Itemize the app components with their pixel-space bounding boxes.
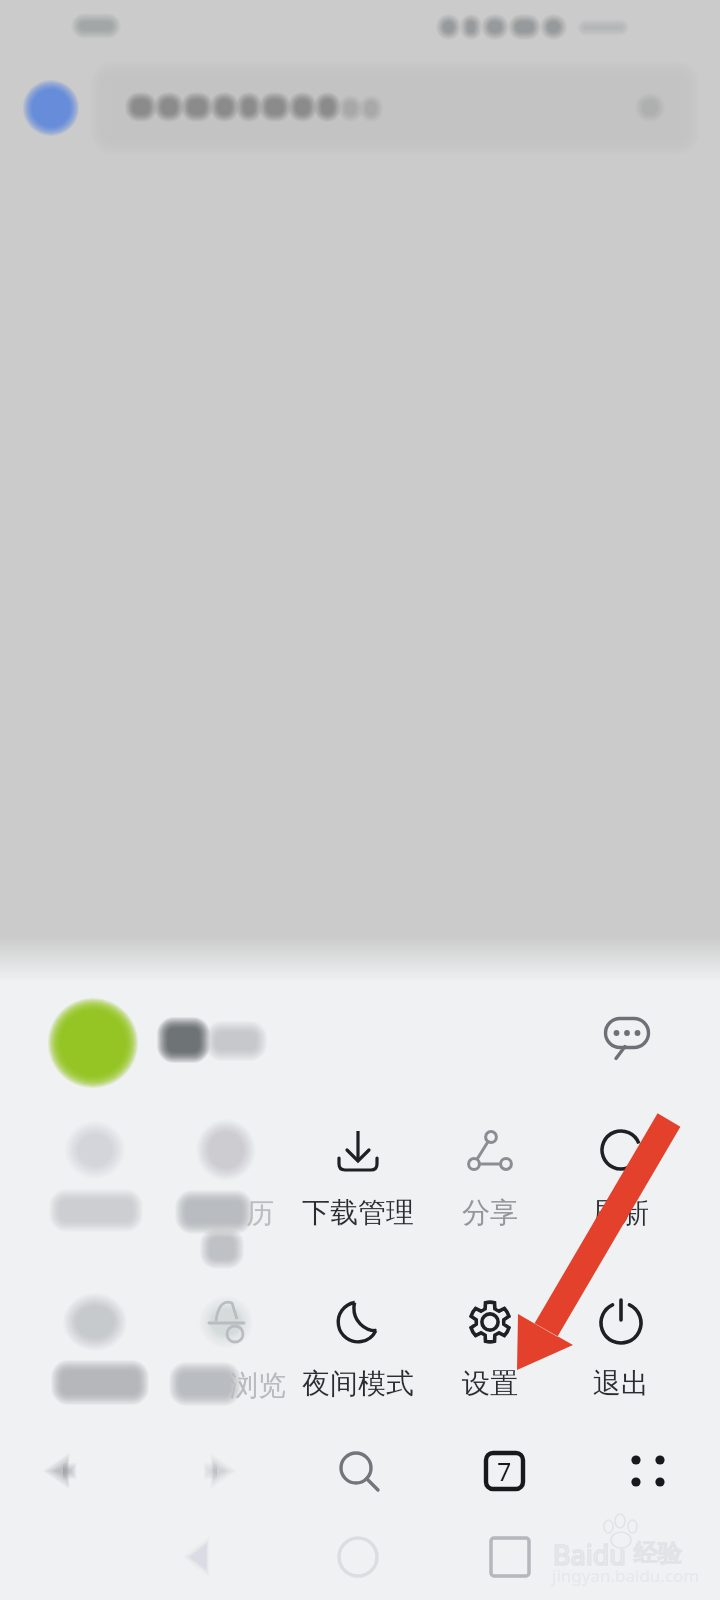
button[interactable]: Bookmarks [30,1108,160,1216]
button[interactable]: 分享 [425,1108,555,1216]
staticText: Baidu [553,1536,626,1573]
button[interactable]: Saved pages [30,1280,160,1388]
button[interactable]: Back [160,1516,242,1598]
staticText: jingyan.baidu.com [552,1564,700,1587]
staticText: 设置 [462,1366,518,1401]
button[interactable]: 夜间模式 [293,1280,423,1388]
button[interactable]: 无痕浏览 [161,1280,291,1388]
button[interactable]: Tabs: 7 open [460,1427,548,1515]
button[interactable]: Recents [469,1516,551,1598]
button[interactable]: 下载管理 [293,1108,423,1216]
button[interactable]: 设置 [425,1280,555,1388]
button[interactable]: Home [317,1516,399,1598]
staticText: 夜间模式 [302,1366,414,1401]
button[interactable]: 退出 [556,1280,686,1388]
button[interactable]: More [604,1427,692,1515]
staticText: 刷新 [593,1195,649,1230]
staticText: 下载管理 [302,1195,414,1230]
staticText: 分享 [462,1195,518,1230]
button[interactable]: Forward [173,1427,261,1515]
button[interactable]: Back [19,1427,107,1515]
staticText: 经验 [634,1538,682,1568]
button[interactable]: 刷新 [556,1108,686,1216]
staticText: 浏览 [230,1368,286,1403]
staticText: 历 [246,1196,274,1231]
button[interactable]: Account avatar [48,998,138,1088]
staticText: 退出 [593,1366,649,1401]
button[interactable]: Feedback [593,1002,661,1070]
button[interactable]: Search [314,1427,402,1515]
button[interactable]: History [161,1108,291,1216]
staticText: 7 [497,1454,512,1488]
